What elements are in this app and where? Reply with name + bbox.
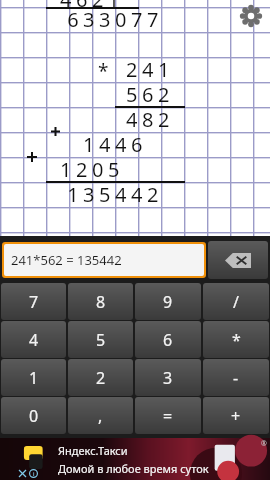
button[interactable]: Ad information xyxy=(28,468,39,479)
staticText: 633077 xyxy=(67,6,163,31)
staticText: 562 xyxy=(126,81,174,106)
staticText: 3 xyxy=(163,367,173,389)
staticText: - xyxy=(233,367,239,389)
button[interactable]: - xyxy=(203,359,269,396)
button[interactable]: / xyxy=(203,283,269,320)
staticText: / xyxy=(233,291,239,313)
staticText: 241 xyxy=(126,56,174,81)
button[interactable]: 8 xyxy=(68,283,133,320)
button[interactable]: 3 xyxy=(135,359,201,396)
staticText: 4 xyxy=(29,329,39,351)
button[interactable]: 6 xyxy=(135,321,201,358)
staticText: Яндекс.Такси xyxy=(58,443,128,458)
staticText: + xyxy=(231,405,241,427)
button[interactable]: * xyxy=(203,321,269,358)
staticText: 241*562 = 135442 xyxy=(11,251,122,269)
button[interactable]: , xyxy=(68,397,133,434)
button[interactable]: 9 xyxy=(135,283,201,320)
staticText: * xyxy=(98,58,109,83)
staticText: = xyxy=(163,405,173,427)
button[interactable]: 1 xyxy=(1,359,66,396)
button[interactable]: 0 xyxy=(1,397,66,434)
button[interactable]: 4 xyxy=(1,321,66,358)
button[interactable]: Close ad xyxy=(17,468,28,479)
button[interactable]: 7 xyxy=(1,283,66,320)
button[interactable]: Яндекс.Такси xyxy=(0,438,270,480)
staticText: 7 xyxy=(29,291,39,313)
staticText: ® xyxy=(261,439,267,449)
button[interactable]: 241*562 = 135442 xyxy=(4,244,204,276)
button[interactable]: Backspace xyxy=(208,241,268,279)
staticText: , xyxy=(98,405,103,427)
button[interactable]: Settings xyxy=(240,5,262,27)
staticText: 0 xyxy=(29,405,39,427)
staticText: 8 xyxy=(96,291,106,313)
staticText: 482 xyxy=(126,106,174,131)
staticText: Домой в любое время суток xyxy=(58,461,209,476)
staticText: 4621 xyxy=(60,0,124,11)
staticText: 135442 xyxy=(67,181,163,206)
staticText: 5 xyxy=(96,329,106,351)
staticText: 6 xyxy=(163,329,173,351)
staticText: 1205 xyxy=(60,156,124,181)
staticText: 1 xyxy=(29,367,39,389)
staticText: * xyxy=(232,329,241,351)
button[interactable]: 2 xyxy=(68,359,133,396)
button[interactable]: = xyxy=(135,397,201,434)
staticText: i xyxy=(33,470,35,478)
button[interactable]: + xyxy=(203,397,269,434)
staticText: 1446 xyxy=(83,131,147,156)
button[interactable]: 5 xyxy=(68,321,133,358)
staticText: 9 xyxy=(163,291,173,313)
staticText: 2 xyxy=(96,367,106,389)
